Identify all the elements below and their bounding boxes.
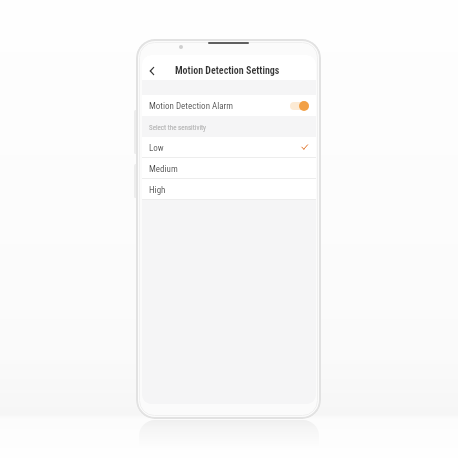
- staticText: Select the sensitivity: [149, 124, 206, 132]
- button[interactable]: Back: [144, 61, 160, 81]
- button[interactable]: High: [142, 179, 316, 200]
- staticText: High: [149, 185, 166, 196]
- button[interactable]: Medium: [142, 158, 316, 179]
- staticText: Medium: [149, 164, 178, 175]
- staticText: Motion Detection Settings: [175, 65, 280, 77]
- staticText: Motion Detection Alarm: [149, 101, 234, 112]
- staticText: Low: [149, 143, 164, 154]
- button[interactable]: Motion Detection Alarm toggle: [290, 100, 309, 111]
- button[interactable]: Low: [142, 137, 316, 158]
- button[interactable]: Motion Detection Alarm: [142, 95, 316, 116]
